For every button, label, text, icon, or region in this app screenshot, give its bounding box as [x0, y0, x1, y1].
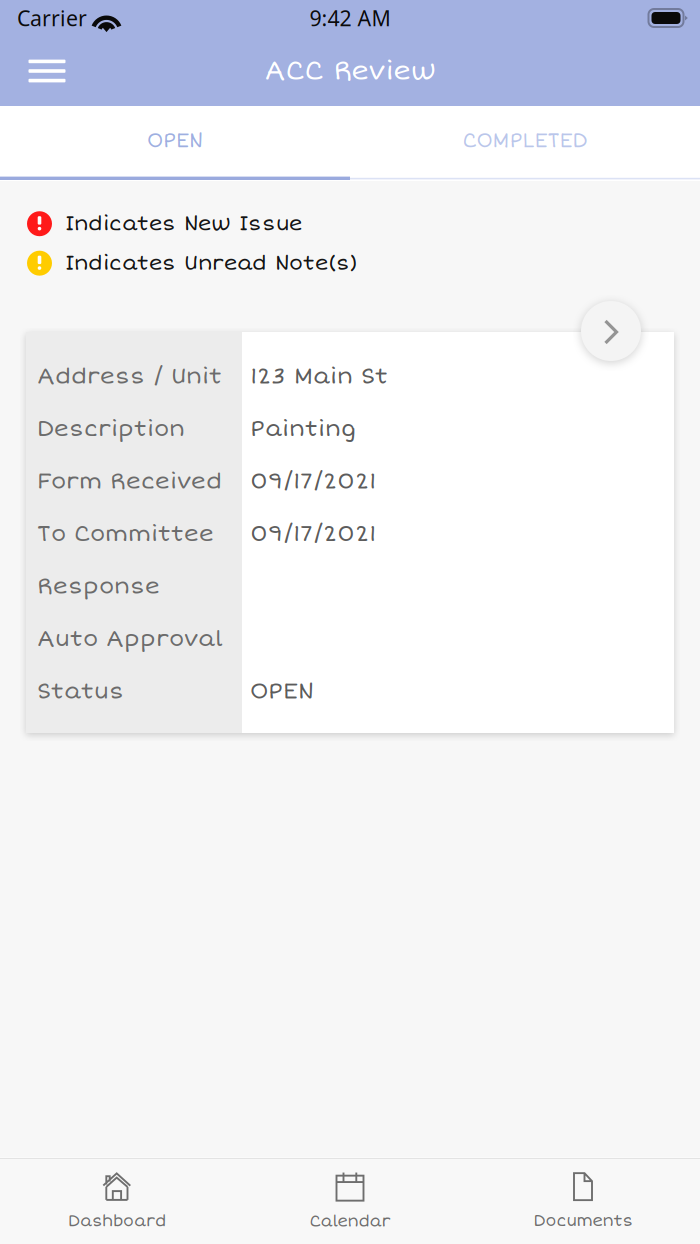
staticText: Response — [37, 572, 160, 600]
staticText: Calendar — [309, 1212, 390, 1231]
button[interactable]: Dashboard — [0, 1159, 233, 1244]
staticText: Dashboard — [68, 1211, 166, 1231]
staticText: OPEN — [147, 129, 203, 153]
staticText: 123 Main St — [250, 362, 388, 390]
staticText: Auto Approval — [37, 625, 223, 653]
staticText: Painting — [250, 415, 356, 443]
staticText: Status — [37, 677, 124, 705]
button[interactable]: Open details — [581, 301, 641, 361]
staticText: Indicates Unread Note(s) — [65, 250, 358, 276]
staticText: Address / Unit — [37, 362, 222, 390]
button[interactable]: Menu — [15, 36, 79, 106]
staticText: COMPLETED — [462, 129, 587, 153]
staticText: 09/17/2021 — [250, 520, 376, 548]
staticText: Description — [37, 415, 185, 443]
staticText: To Committee — [37, 520, 214, 548]
staticText: Indicates New Issue — [65, 211, 302, 236]
staticText: Carrier — [17, 4, 87, 32]
staticText: 09/17/2021 — [250, 467, 376, 495]
staticText: OPEN — [250, 677, 314, 705]
staticText: ACC Review — [264, 55, 435, 87]
staticText: Form Received — [37, 467, 222, 495]
button[interactable]: Calendar — [233, 1159, 466, 1244]
button[interactable]: OPEN — [0, 106, 350, 176]
staticText: 9:42 AM — [309, 4, 390, 32]
button[interactable]: COMPLETED — [350, 106, 700, 176]
button[interactable]: Documents — [466, 1159, 699, 1244]
staticText: Documents — [533, 1211, 632, 1231]
